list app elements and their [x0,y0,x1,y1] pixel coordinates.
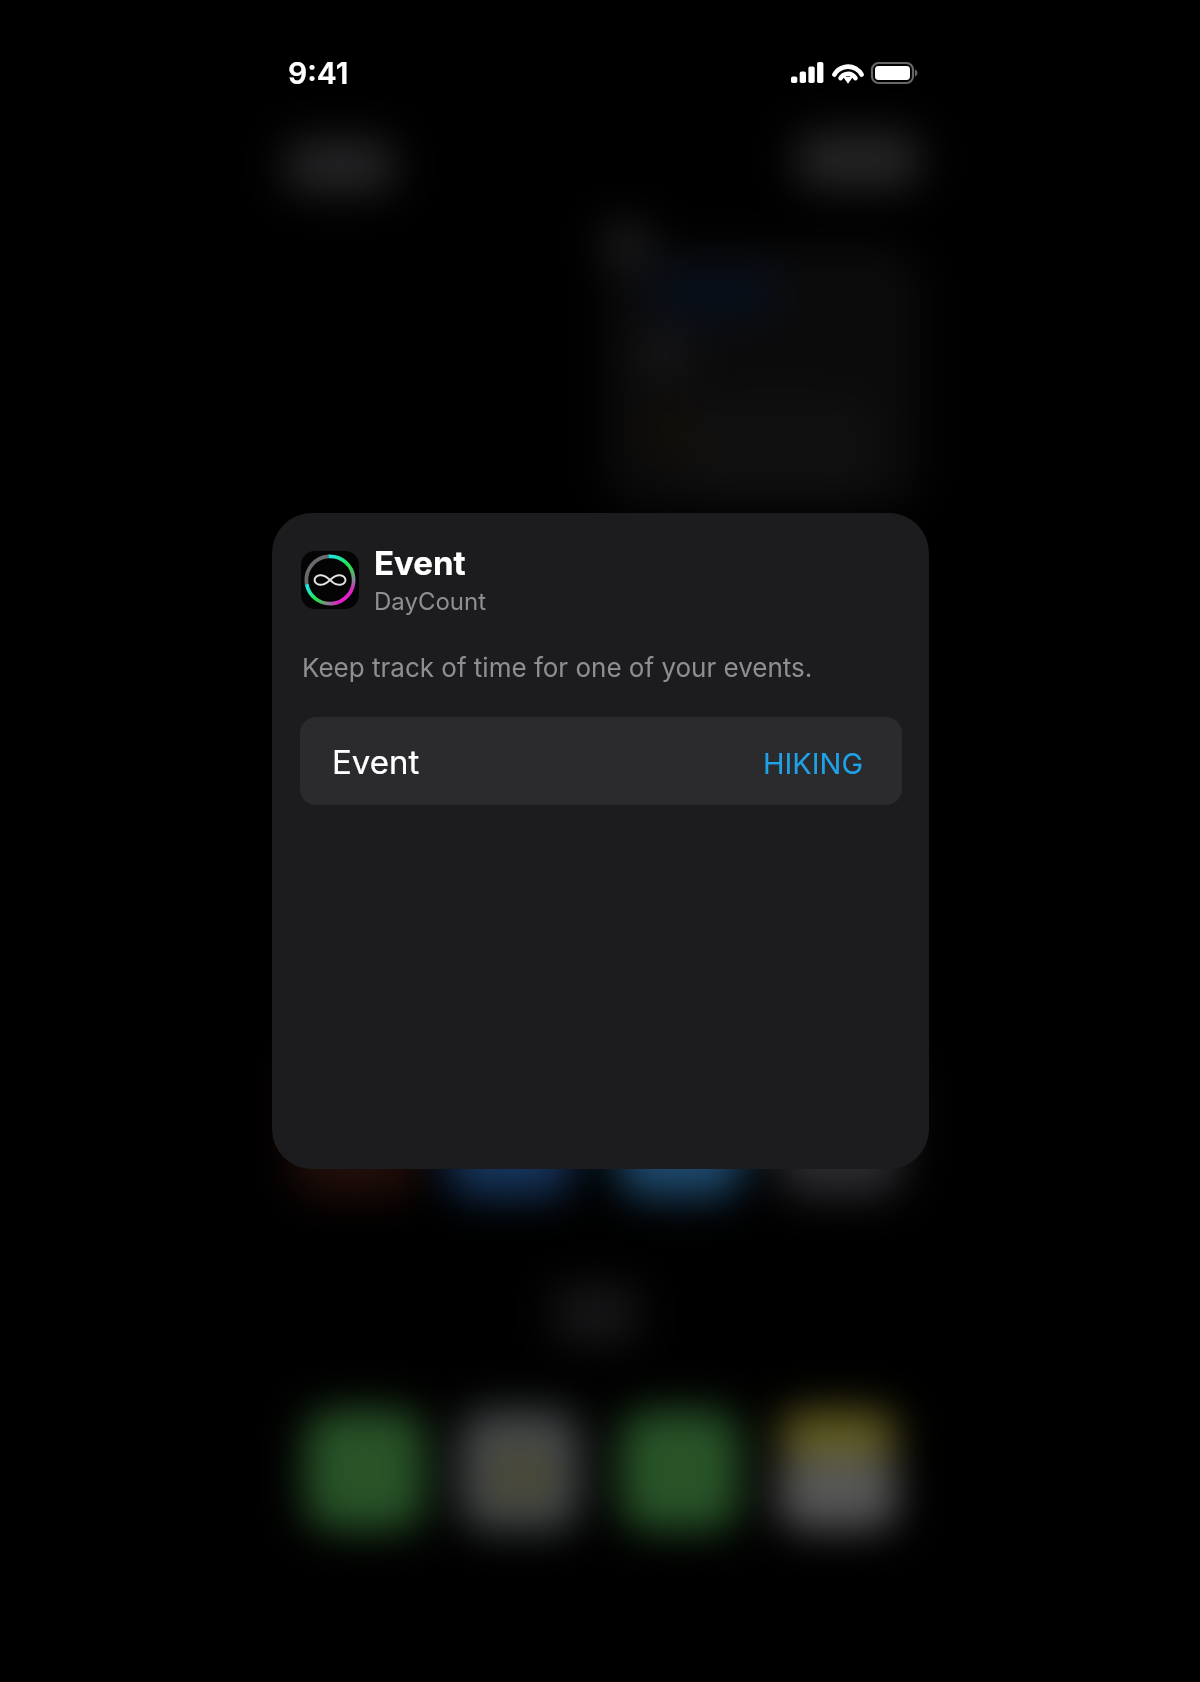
button[interactable]: Event [300,717,902,805]
staticText: Event [332,742,420,782]
staticText: Keep track of time for one of your event… [302,652,813,683]
other: DayCount app icon [301,551,359,609]
staticText: DayCount [374,587,487,616]
staticText: Event [374,543,466,583]
staticText: 9:41 [288,55,349,91]
other: Status icons [788,56,928,88]
staticText: HIKING [763,746,864,781]
